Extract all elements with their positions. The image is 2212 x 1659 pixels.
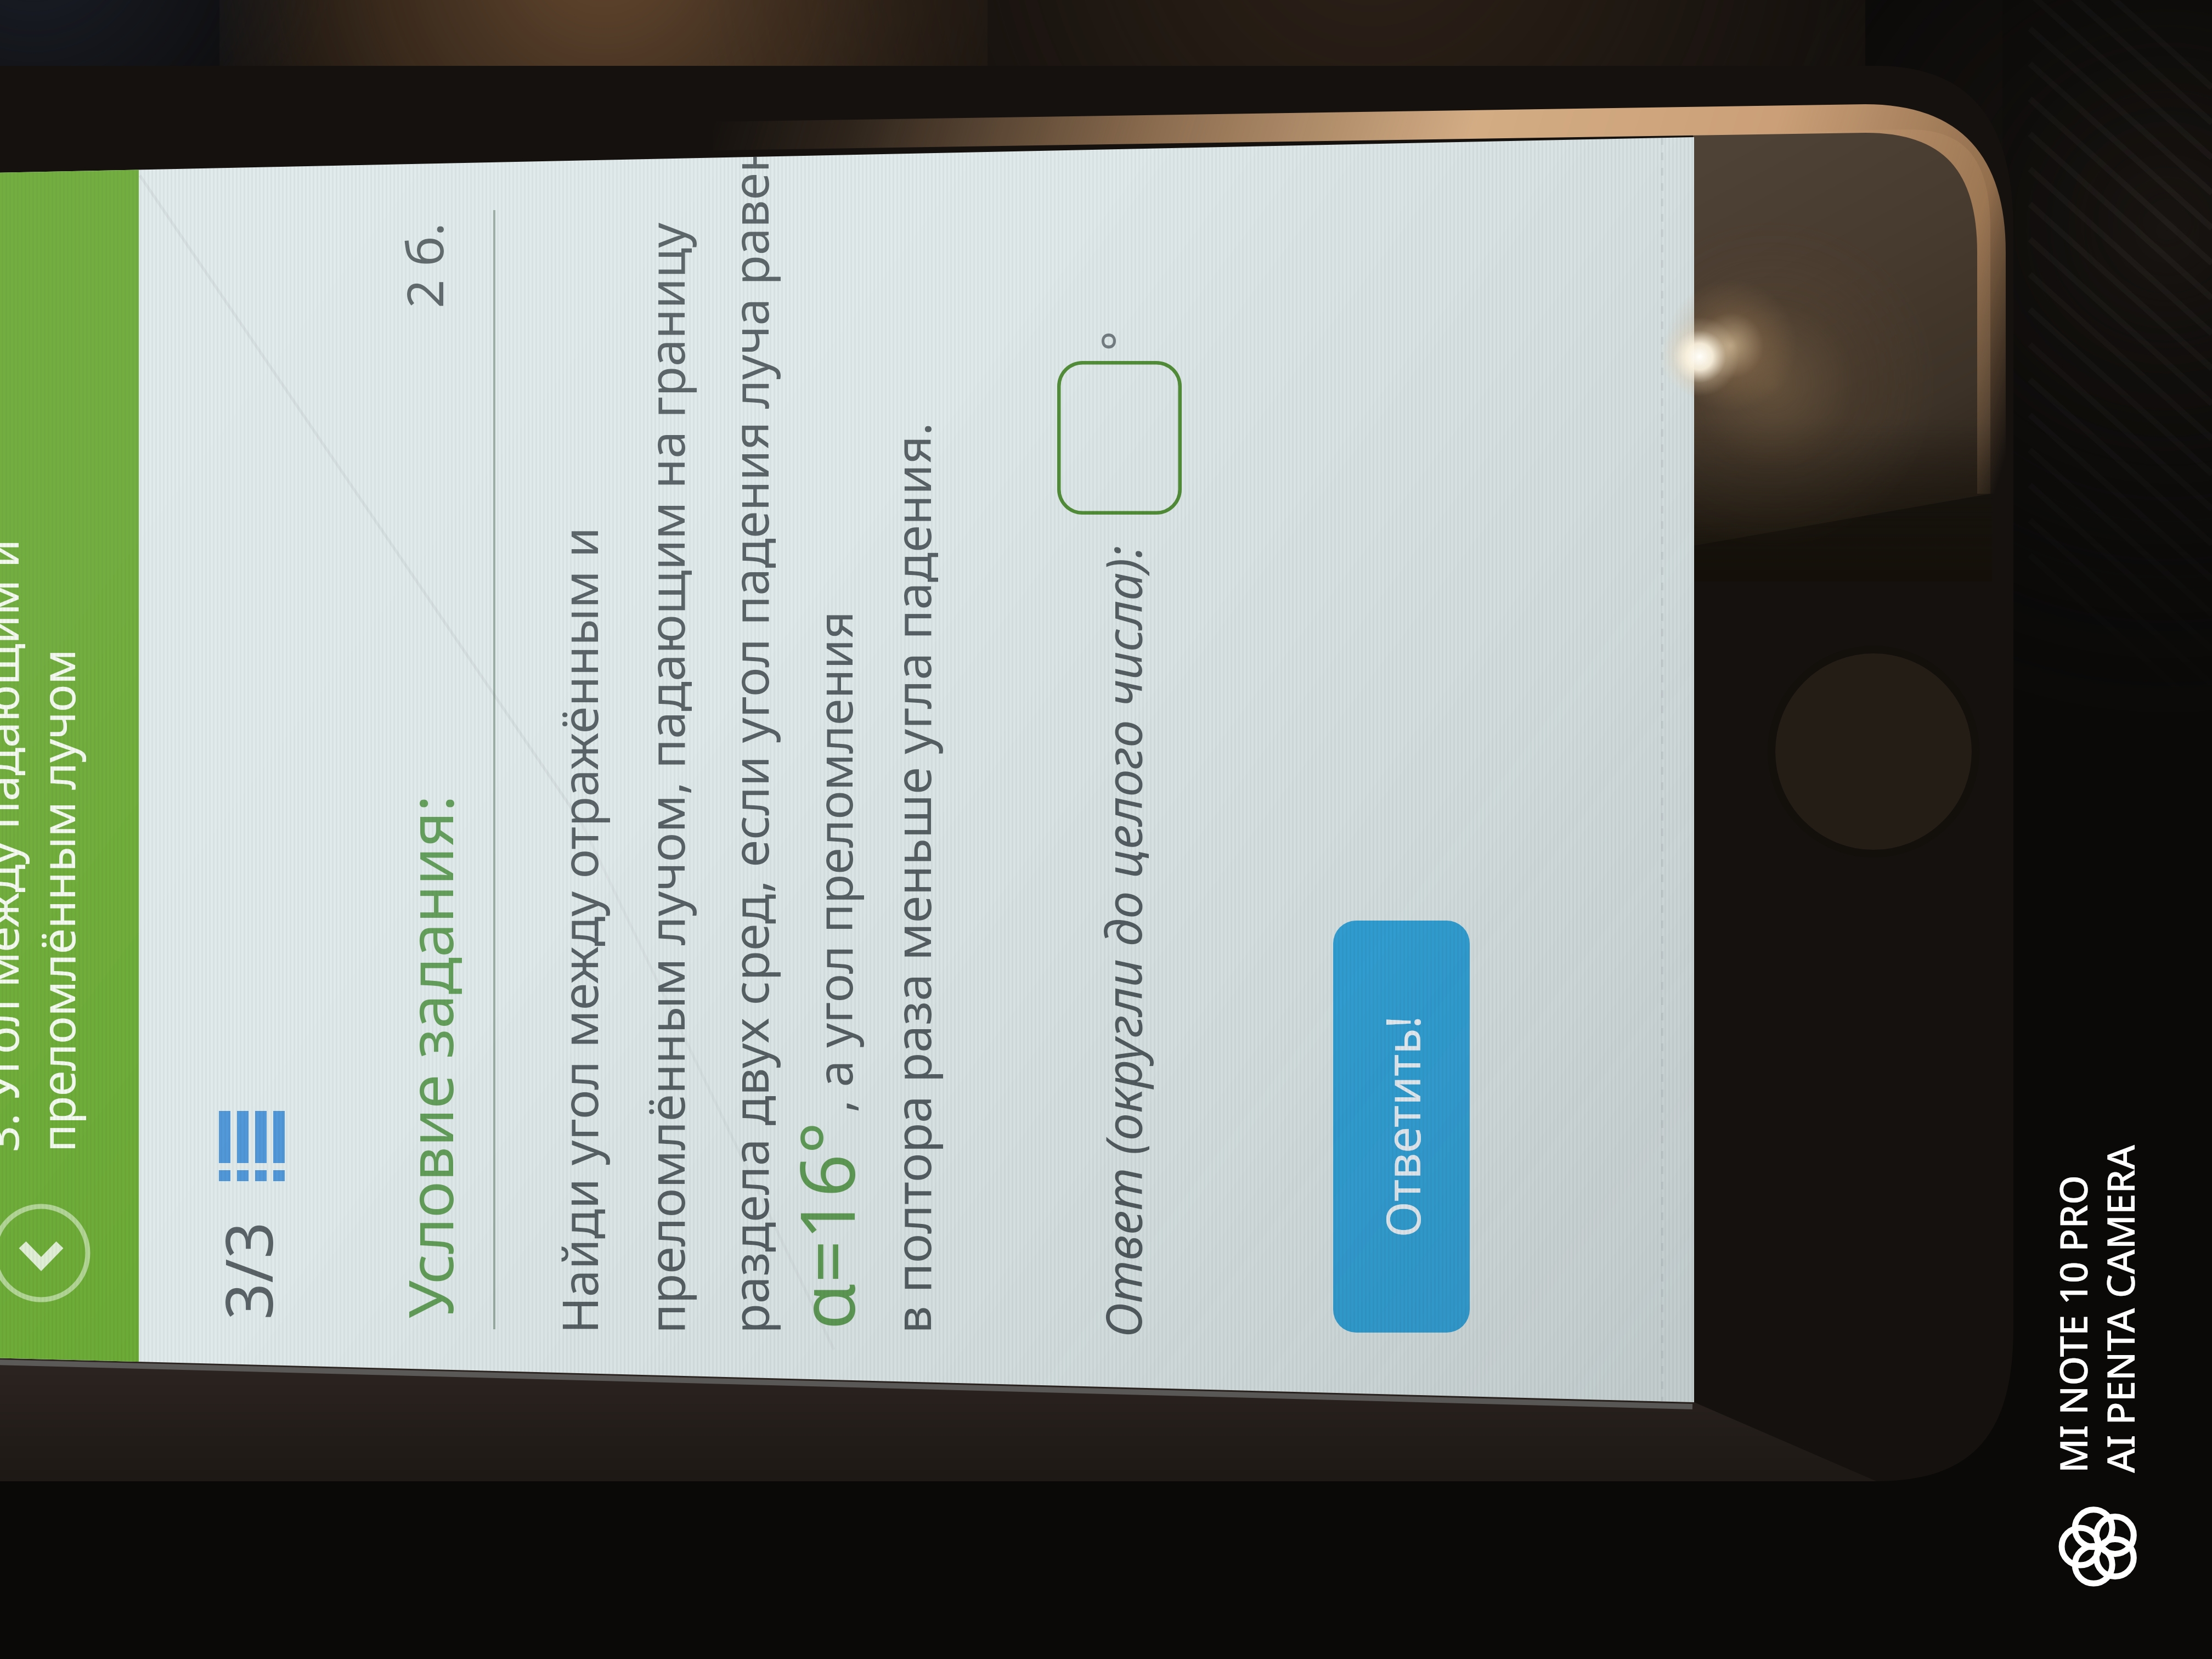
staticText: 3. Угол между падающим и [0,539,32,1152]
staticText: ° [1085,331,1149,351]
staticText: преломлённым лучом [26,649,88,1152]
staticText: в полтора раза меньше угла падения. [878,422,946,1334]
staticText: Ответ (округли до целого числа): [1089,545,1156,1338]
staticText: Ответить! [1370,1016,1434,1237]
button[interactable]: Свернуть [0,1204,91,1302]
staticText: α=16° [775,1121,877,1330]
staticText: преломлённым лучом, падающим на границу [632,223,699,1334]
staticText: 3/3 [204,1222,292,1320]
staticText: Условие задания: [387,795,471,1318]
staticText: , а угол преломления [801,611,867,1113]
button[interactable]: Поле ответа [1057,361,1182,515]
staticText: 2 б. [390,222,458,308]
staticText: Найди угол между отражённым и [545,527,613,1334]
staticText: AI PENTA CAMERA [2094,1144,2146,1473]
staticText: MI NOTE 10 PRO [2047,1175,2098,1473]
staticText: раздела двух сред, если угол падения луч… [716,142,783,1334]
button[interactable]: Ответить! [1333,921,1470,1333]
